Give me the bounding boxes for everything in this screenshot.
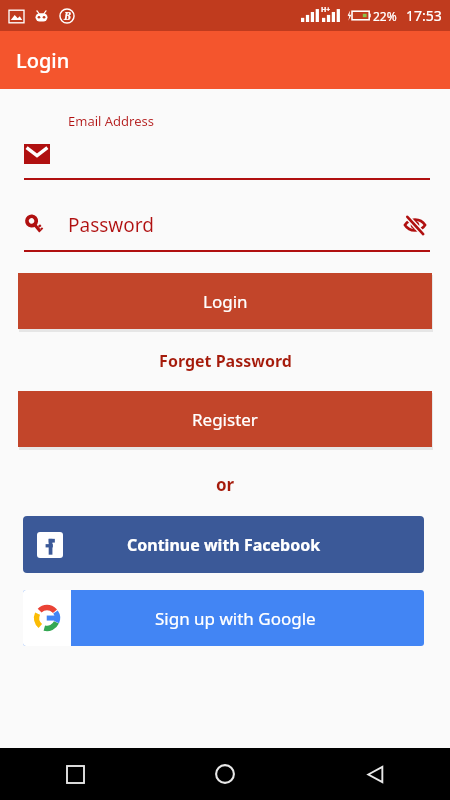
staticText: 17:53 (406, 6, 442, 25)
staticText: Register (192, 408, 258, 431)
button[interactable]: Continue with Facebook (23, 516, 424, 573)
button[interactable]: Back (300, 748, 450, 800)
button[interactable]: Sign up with Google (23, 590, 424, 646)
staticText: or (216, 473, 235, 496)
staticText: Continue with Facebook (127, 534, 321, 556)
button[interactable]: Home (150, 748, 300, 800)
staticText: B (64, 9, 71, 23)
staticText: Login (203, 290, 248, 313)
button[interactable]: Login (18, 273, 432, 329)
staticText: Email Address (68, 112, 154, 130)
button[interactable]: Recent apps (0, 748, 150, 800)
staticText: H+ (321, 5, 331, 15)
button[interactable] (24, 143, 430, 180)
button[interactable]: Toggle password visibility (400, 210, 430, 240)
button[interactable]: Password (24, 206, 430, 252)
staticText: Login (16, 47, 70, 74)
button[interactable]: Forget Password (0, 350, 450, 372)
staticText: Sign up with Google (155, 607, 316, 630)
staticText: Password (68, 212, 154, 238)
staticText: Forget Password (159, 350, 292, 372)
staticText: 22% (373, 8, 397, 24)
button[interactable]: Register (18, 391, 432, 447)
